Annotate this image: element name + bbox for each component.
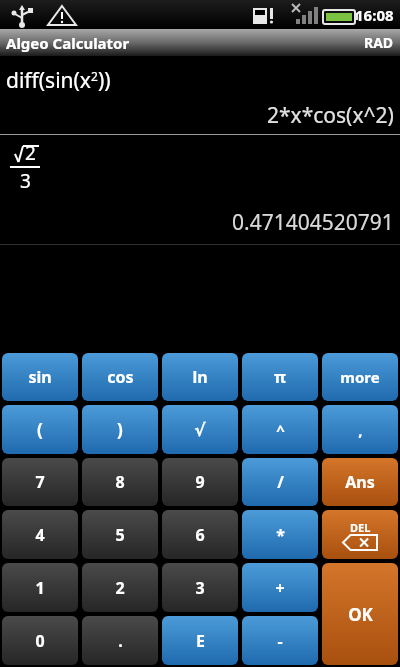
button[interactable]: 4 (2, 510, 78, 559)
staticText: * (276, 524, 285, 546)
button[interactable]: 5 (82, 510, 158, 559)
button[interactable]: 0 (2, 616, 78, 665)
button[interactable]: ) (82, 405, 158, 454)
staticText: Ans (345, 471, 375, 493)
button[interactable]: , (322, 405, 398, 454)
staticText: )) (98, 66, 111, 95)
staticText: 6 (195, 524, 205, 546)
button[interactable]: ( (2, 405, 78, 454)
button[interactable]: π (242, 353, 318, 401)
staticText: √ (194, 420, 206, 440)
button[interactable]: + (242, 563, 318, 612)
button[interactable]: * (242, 510, 318, 559)
staticText: / (277, 471, 284, 493)
staticText: 2 (25, 140, 36, 166)
staticText: 7 (35, 471, 45, 493)
staticText: 0 (35, 630, 45, 652)
button[interactable]: 2 (82, 563, 158, 612)
staticText: π (274, 366, 286, 388)
button[interactable]: . (82, 616, 158, 665)
staticText: 2 (91, 68, 98, 84)
staticText: DEL (350, 520, 371, 535)
staticText: 2*x*cos(x^2) (267, 101, 394, 130)
button[interactable]: Algeo Calculator (0, 29, 400, 56)
staticText: diff(sin(x (6, 66, 91, 95)
button[interactable]: / (242, 458, 318, 506)
staticText: cos (107, 366, 134, 388)
button[interactable]: more (322, 353, 398, 401)
button[interactable]: ^ (242, 405, 318, 454)
button[interactable]: 1 (2, 563, 78, 612)
button[interactable]: 3 (162, 563, 238, 612)
staticText: ln (192, 366, 208, 388)
staticText: 5 (115, 524, 125, 546)
staticText: ) (117, 418, 123, 441)
staticText: Algeo Calculator (6, 33, 130, 53)
staticText: - (277, 630, 283, 652)
staticText: E (196, 630, 205, 652)
staticText: . (118, 630, 123, 652)
button[interactable]: OK (322, 563, 398, 665)
button[interactable]: √ (162, 405, 238, 454)
staticText: 4 (35, 524, 45, 546)
button[interactable]: 9 (162, 458, 238, 506)
button[interactable]: cos (82, 353, 158, 401)
button[interactable]: 7 (2, 458, 78, 506)
staticText: RAD (364, 33, 394, 52)
staticText: + (275, 577, 285, 599)
staticText: 9 (195, 471, 205, 493)
staticText: 0.471404520791 (232, 208, 394, 237)
staticText: 16:08 (355, 5, 394, 25)
staticText: ^ (276, 420, 285, 440)
staticText: 3 (195, 577, 205, 599)
staticText: 1 (35, 577, 45, 599)
button[interactable]: 8 (82, 458, 158, 506)
button[interactable]: Delete (322, 510, 398, 559)
staticText: more (340, 367, 380, 387)
staticText: , (358, 420, 363, 440)
staticText: ( (37, 418, 43, 441)
staticText: sin (28, 366, 52, 388)
staticText: 3 (20, 168, 31, 194)
button[interactable]: Ans (322, 458, 398, 506)
staticText: OK (348, 603, 373, 626)
button[interactable]: E (162, 616, 238, 665)
button[interactable]: sin (2, 353, 78, 401)
button[interactable]: - (242, 616, 318, 665)
button[interactable]: ln (162, 353, 238, 401)
button[interactable]: 6 (162, 510, 238, 559)
staticText: 2 (115, 577, 125, 599)
staticText: 8 (115, 471, 125, 493)
